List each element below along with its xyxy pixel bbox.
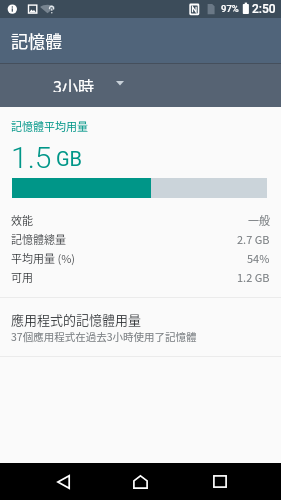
button[interactable]: Back [41,463,85,500]
staticText: 1.2 GB [237,269,270,285]
staticText: 37個應用程式在過去3小時使用了記憶體 [11,329,197,344]
button[interactable]: Recent apps [197,463,242,500]
button[interactable]: 應用程式的記憶體用量 [0,298,281,356]
staticText: 記憶體 [11,28,62,53]
staticText: 3小時 [53,74,94,92]
staticText: 一般 [248,212,270,228]
staticText: 可用 [11,269,33,285]
staticText: 2.7 GB [237,231,270,247]
staticText: 2:50 [252,2,276,16]
staticText: 效能 [11,212,33,228]
staticText: 97% [221,3,239,14]
staticText: 54% [247,250,270,266]
staticText: 記憶體平均用量 [11,118,88,134]
button[interactable]: 3小時 [53,63,124,107]
staticText: 1.5 [11,140,52,175]
staticText: 平均用量 (%) [11,250,76,266]
staticText: GB [56,147,83,170]
button[interactable]: Home [118,463,163,500]
staticText: 應用程式的記憶體用量 [11,310,142,329]
staticText: 記憶體總量 [11,231,66,247]
